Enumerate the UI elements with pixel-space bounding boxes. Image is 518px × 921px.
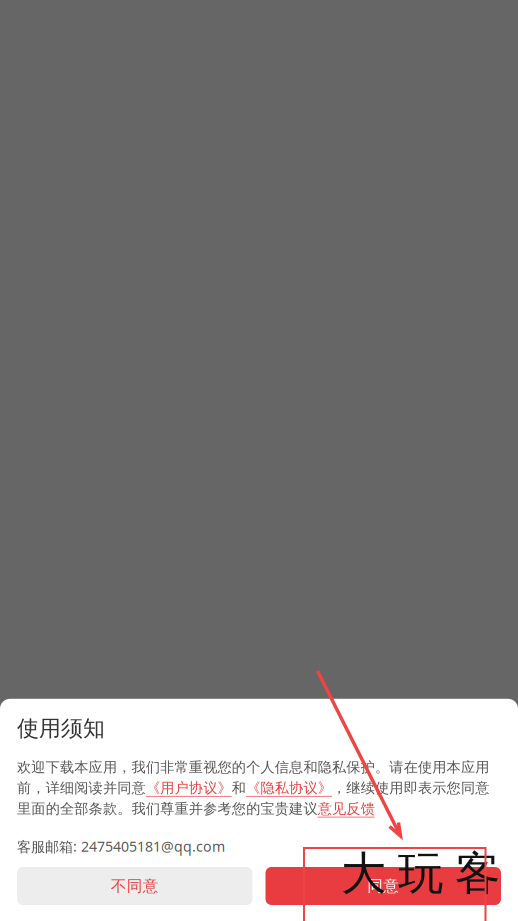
staticText: 同意 (367, 876, 399, 896)
staticText: 大玩客 (341, 845, 500, 902)
staticText: 欢迎下载本应用，我们非常重视您的个人信息和隐私保护。请在使用本应用前，详细阅读并… (17, 758, 489, 818)
button[interactable]: 不同意 (17, 867, 252, 905)
button[interactable]: 同意 (265, 867, 501, 905)
staticText: 不同意 (111, 876, 159, 896)
staticText: 使用须知 (17, 715, 105, 742)
staticText: 客服邮箱: 2475405181@qq.com (17, 837, 225, 856)
